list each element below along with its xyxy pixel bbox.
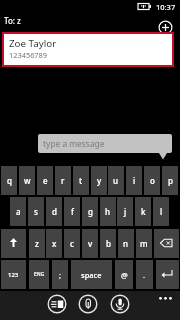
button[interactable]: . <box>136 260 153 289</box>
staticText: ENG <box>34 271 45 278</box>
button[interactable]: t <box>73 166 89 195</box>
button[interactable]: type a message <box>38 134 172 153</box>
button[interactable]: r <box>55 166 71 195</box>
staticText: c <box>70 238 74 249</box>
button[interactable]: space <box>71 260 112 289</box>
button[interactable]: q <box>1 166 17 195</box>
staticText: To: z <box>4 15 21 26</box>
staticText: Zoe Taylor <box>9 37 57 50</box>
button[interactable]: h <box>100 197 116 226</box>
button[interactable]: u <box>108 166 124 195</box>
button[interactable]: x <box>46 229 62 258</box>
staticText: s <box>34 206 38 217</box>
button[interactable]: y <box>91 166 107 195</box>
staticText: k <box>141 206 146 217</box>
button[interactable]: @ <box>115 260 133 289</box>
button[interactable]: ENG <box>29 260 49 289</box>
button[interactable]: a <box>10 197 26 226</box>
staticText: u <box>113 175 119 186</box>
button[interactable]: c <box>64 229 80 258</box>
staticText: z <box>35 238 39 249</box>
button[interactable]: ; <box>52 260 68 289</box>
button[interactable]: f <box>64 197 80 226</box>
staticText: b <box>106 238 111 249</box>
button[interactable]: b <box>100 229 116 258</box>
staticText: h <box>105 206 111 217</box>
button[interactable] <box>47 294 67 314</box>
staticText: a <box>16 206 21 217</box>
staticText: t <box>79 175 83 186</box>
staticText: w <box>24 175 31 186</box>
button[interactable]: d <box>46 197 62 226</box>
button[interactable] <box>158 20 173 35</box>
button[interactable]: e <box>37 166 53 195</box>
button[interactable]: m <box>136 229 152 258</box>
button[interactable]: s <box>28 197 44 226</box>
staticText: y <box>97 175 102 186</box>
staticText: type a message <box>43 138 105 149</box>
staticText: space <box>81 270 102 280</box>
staticText: j <box>124 206 127 217</box>
button[interactable] <box>1 229 26 258</box>
button[interactable]: v <box>82 229 98 258</box>
staticText: @ <box>121 270 128 280</box>
staticText: ; <box>59 270 62 280</box>
staticText: f <box>71 206 74 217</box>
button[interactable]: i <box>126 166 142 195</box>
staticText: o <box>150 175 155 186</box>
button[interactable]: z <box>29 229 45 258</box>
staticText: v <box>88 238 93 249</box>
button[interactable]: 123 <box>1 260 26 289</box>
button[interactable]: o <box>144 166 160 195</box>
staticText: d <box>52 206 57 217</box>
staticText: i <box>133 175 136 186</box>
button[interactable]: n <box>118 229 134 258</box>
staticText: l <box>160 206 163 217</box>
staticText: n <box>123 238 129 249</box>
staticText: p <box>168 175 173 186</box>
staticText: e <box>43 175 48 186</box>
staticText: . <box>143 270 146 280</box>
button[interactable]: g <box>82 197 98 226</box>
button[interactable]: l <box>153 197 169 226</box>
button[interactable]: j <box>117 197 133 226</box>
button[interactable]: Zoe Taylor <box>2 32 174 67</box>
button[interactable]: w <box>19 166 35 195</box>
staticText: g <box>88 206 93 217</box>
button[interactable]: k <box>135 197 151 226</box>
button[interactable] <box>110 294 130 314</box>
staticText: r <box>61 175 65 186</box>
button[interactable] <box>154 229 179 258</box>
button[interactable] <box>156 260 179 289</box>
staticText: x <box>52 238 57 249</box>
staticText: 123456789 <box>9 50 48 60</box>
staticText: q <box>7 175 12 186</box>
staticText: m <box>140 238 148 249</box>
button[interactable] <box>78 294 98 314</box>
button[interactable]: p <box>162 166 178 195</box>
staticText: 10:37 <box>156 2 176 12</box>
staticText: 123 <box>8 271 19 279</box>
